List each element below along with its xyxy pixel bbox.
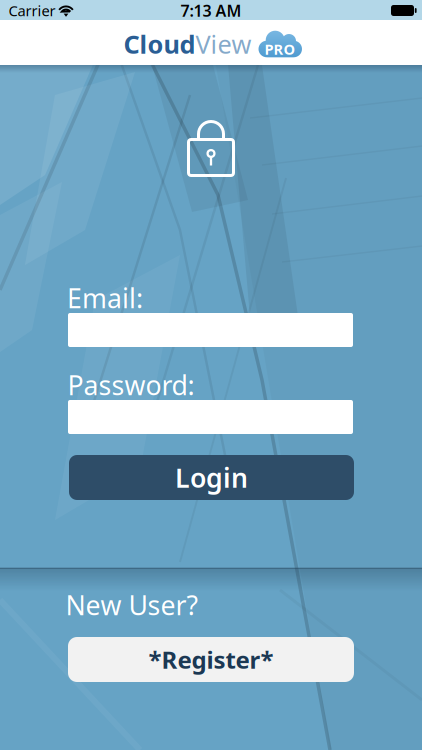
staticText: View — [195, 27, 251, 61]
staticText: Cloud — [123, 27, 195, 61]
button[interactable]: *Register* — [68, 637, 354, 682]
staticText: Email: — [67, 280, 143, 316]
staticText: New User? — [65, 587, 198, 623]
staticText: PRO — [264, 39, 295, 59]
staticText: Password: — [67, 367, 194, 403]
staticText: Carrier — [8, 1, 55, 20]
staticText: Login — [175, 460, 248, 495]
button[interactable]: Login — [69, 455, 354, 500]
staticText: 7:13 AM — [180, 0, 241, 21]
staticText: *Register* — [148, 644, 273, 675]
